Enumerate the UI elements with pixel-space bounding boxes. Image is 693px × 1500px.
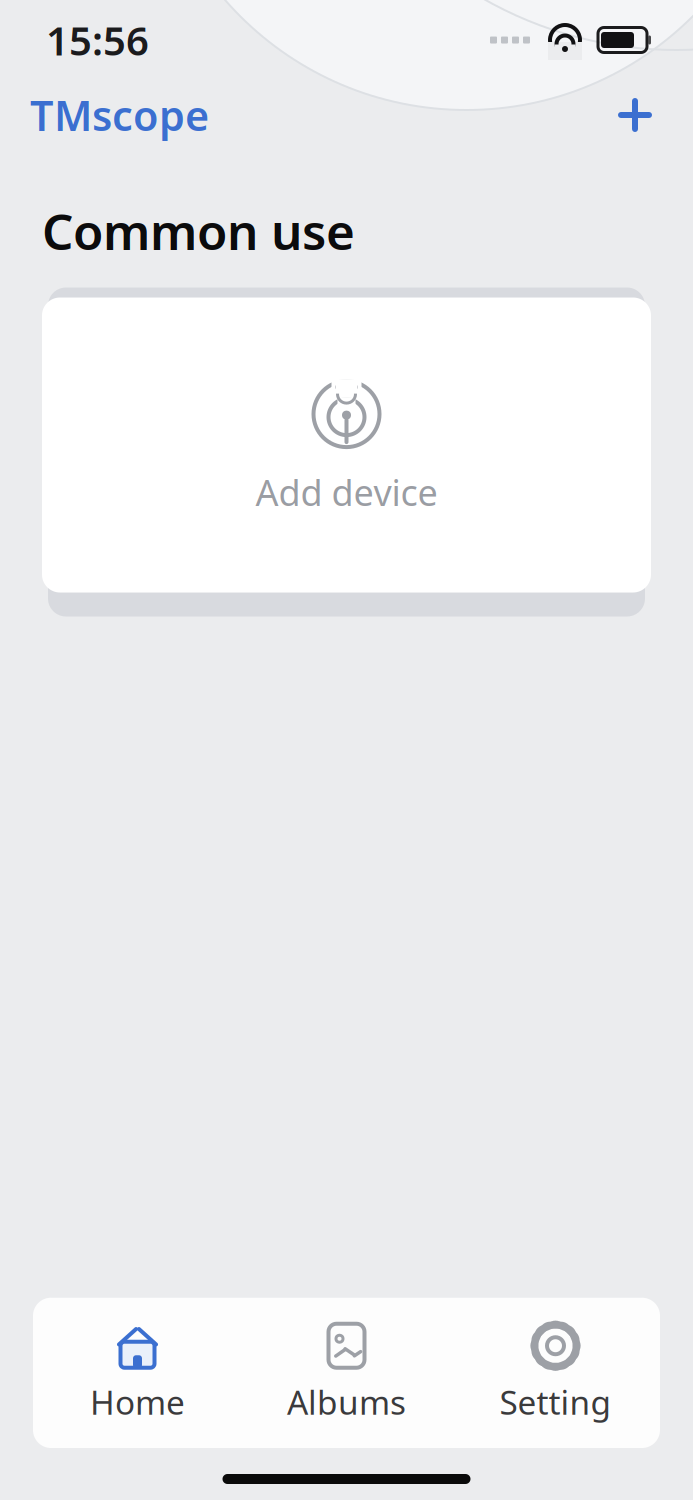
staticText: Albums xyxy=(287,1380,406,1424)
staticText: Home xyxy=(90,1380,185,1424)
button[interactable]: Home xyxy=(33,1316,242,1430)
staticText: Add device xyxy=(255,468,437,516)
button[interactable]: Add xyxy=(607,87,663,143)
button[interactable]: Add device xyxy=(42,297,651,592)
staticText: 15:56 xyxy=(46,13,149,66)
staticText: Setting xyxy=(499,1380,611,1424)
button[interactable]: TMscope xyxy=(30,88,209,142)
button[interactable]: Albums xyxy=(242,1316,451,1430)
staticText: Common use xyxy=(42,198,355,263)
staticText: TMscope xyxy=(30,88,209,142)
button[interactable]: Setting xyxy=(451,1316,660,1430)
